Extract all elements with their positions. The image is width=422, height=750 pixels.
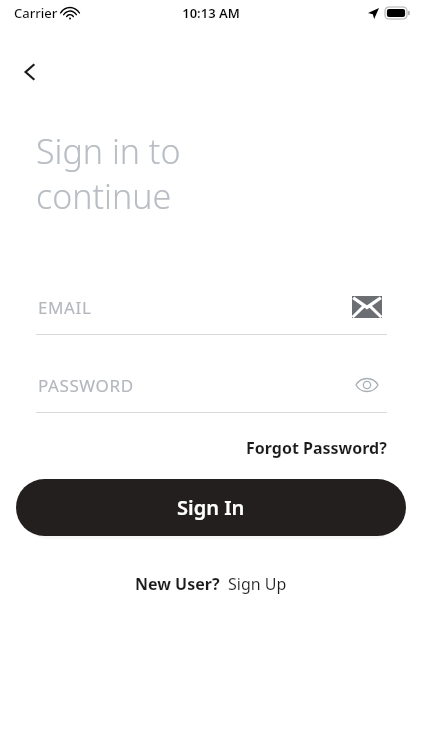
button[interactable]: Password	[36, 368, 387, 413]
button[interactable]: Email icon	[347, 290, 387, 324]
staticText: Sign in to continue	[36, 128, 181, 219]
staticText: Carrier	[14, 4, 58, 22]
button[interactable]: Email	[36, 290, 387, 335]
button[interactable]: New User?	[133, 569, 289, 599]
button[interactable]: Forgot Password?	[246, 434, 387, 462]
staticText: Forgot Password?	[246, 437, 387, 459]
button[interactable]: Sign In	[16, 479, 406, 536]
staticText: PASSWORD	[38, 374, 347, 397]
staticText: Sign In	[177, 494, 245, 521]
staticText: 10:13 AM	[182, 4, 240, 22]
staticText: EMAIL	[38, 296, 347, 319]
staticText: New User?	[135, 573, 220, 595]
staticText: Sign Up	[228, 573, 287, 595]
button[interactable]: Show password	[347, 368, 387, 402]
button[interactable]: Back	[8, 50, 52, 94]
